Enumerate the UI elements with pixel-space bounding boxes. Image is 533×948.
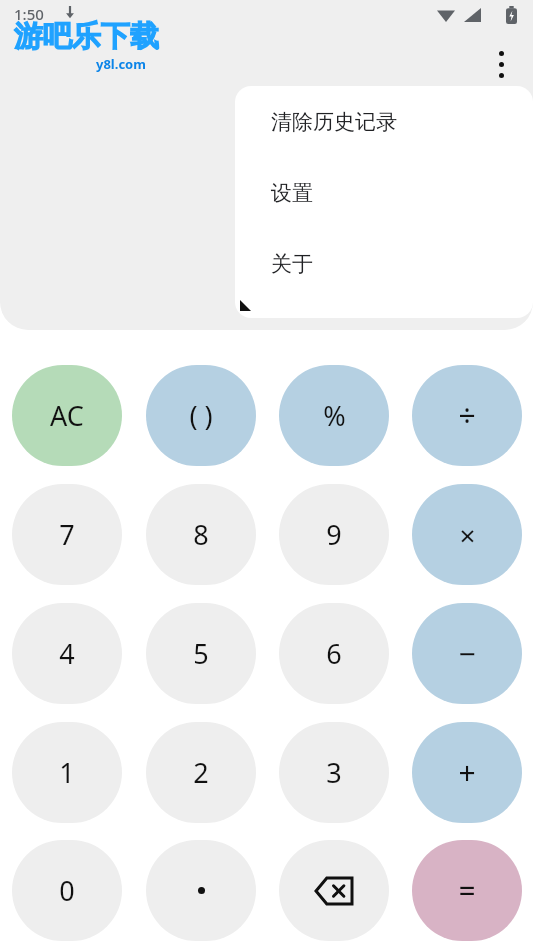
staticText: 设置 (271, 180, 313, 206)
staticText: ÷ (458, 395, 476, 436)
button[interactable]: = (412, 840, 522, 941)
button[interactable]: Backspace (279, 840, 389, 941)
button[interactable]: 关于 (235, 228, 533, 299)
button[interactable]: 8 (146, 484, 256, 585)
staticText: % (323, 397, 346, 434)
button[interactable]: 1 (12, 722, 122, 823)
staticText: 0 (59, 872, 75, 909)
button[interactable]: 清除历史记录 (235, 86, 533, 157)
staticText: ( ) (189, 397, 213, 434)
button[interactable]: × (412, 484, 522, 585)
staticText: 清除历史记录 (271, 109, 397, 135)
staticText: 7 (59, 516, 75, 553)
button[interactable] (146, 840, 256, 941)
staticText: 3 (326, 754, 342, 791)
staticText: 游吧乐下载 (14, 18, 159, 55)
staticText: 1:50 (14, 4, 44, 24)
button[interactable]: 2 (146, 722, 256, 823)
button[interactable]: − (412, 603, 522, 704)
staticText: 2 (193, 754, 209, 791)
button[interactable]: ÷ (412, 365, 522, 466)
button[interactable]: + (412, 722, 522, 823)
staticText: − (458, 633, 476, 674)
button[interactable]: 4 (12, 603, 122, 704)
staticText: 9 (326, 516, 342, 553)
button[interactable]: 0 (12, 840, 122, 941)
staticText: 1 (59, 754, 75, 791)
staticText: 4 (59, 635, 75, 672)
button[interactable]: 5 (146, 603, 256, 704)
staticText: 5 (193, 635, 209, 672)
button[interactable]: ( ) (146, 365, 256, 466)
button[interactable]: AC (12, 365, 122, 466)
staticText: = (458, 870, 476, 911)
button[interactable]: 设置 (235, 157, 533, 228)
staticText: 8 (193, 516, 209, 553)
staticText: AC (50, 397, 84, 434)
staticText: + (458, 752, 476, 793)
staticText: × (459, 516, 476, 554)
button[interactable]: 7 (12, 484, 122, 585)
staticText: 关于 (271, 251, 313, 277)
button[interactable]: More options (477, 40, 525, 88)
button[interactable]: 9 (279, 484, 389, 585)
button[interactable]: 3 (279, 722, 389, 823)
button[interactable]: 6 (279, 603, 389, 704)
staticText: y8l.com (96, 55, 146, 73)
staticText: 6 (326, 635, 342, 672)
button[interactable]: % (279, 365, 389, 466)
